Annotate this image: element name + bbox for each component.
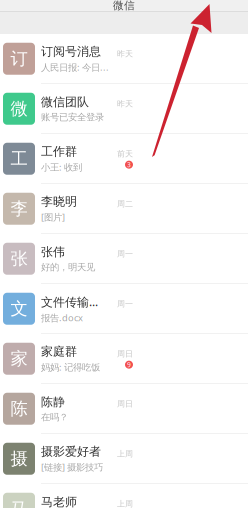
button[interactable]: 陈: [0, 384, 248, 434]
button[interactable]: 张: [0, 234, 248, 284]
button[interactable]: 家: [0, 334, 248, 384]
staticText: 微: [10, 98, 27, 119]
staticText: 工: [10, 148, 27, 169]
staticText: 微信团队: [41, 95, 89, 109]
staticText: 昨天: [117, 49, 133, 59]
staticText: 摄影爱好者: [41, 444, 101, 459]
staticText: 周日: [117, 399, 133, 409]
staticText: 账号已安全登录: [41, 111, 104, 123]
button[interactable]: 李: [0, 184, 248, 234]
staticText: 妈妈: 记得吃饭: [41, 361, 100, 373]
button[interactable]: 工: [0, 134, 248, 184]
staticText: 订阅号消息: [41, 44, 101, 59]
staticText: 张伟: [41, 245, 65, 259]
staticText: 微信: [113, 0, 135, 12]
staticText: 李晓明: [41, 194, 77, 209]
staticText: 周一: [117, 249, 133, 259]
staticText: 好的，明天见: [41, 261, 95, 273]
staticText: 小王: 收到: [41, 161, 82, 173]
button[interactable]: 微: [0, 84, 248, 134]
staticText: 陈: [10, 398, 27, 419]
staticText: [图片]: [41, 211, 65, 223]
staticText: 订: [10, 48, 27, 69]
button[interactable]: 订: [0, 34, 248, 84]
staticText: 周一: [117, 299, 133, 309]
staticText: 前天: [117, 149, 133, 159]
staticText: 陈静: [41, 395, 65, 409]
staticText: 上周: [117, 499, 133, 508]
staticText: 周二: [117, 199, 133, 209]
staticText: 9: [127, 360, 131, 369]
staticText: 家庭群: [41, 344, 77, 359]
staticText: 马: [10, 498, 27, 508]
button[interactable]: 摄: [0, 434, 248, 484]
staticText: 李: [10, 198, 27, 219]
staticText: 昨天: [117, 99, 133, 109]
staticText: 文件传输助手: [41, 294, 109, 310]
staticText: 摄: [10, 448, 27, 469]
button[interactable]: 马: [0, 484, 248, 508]
staticText: 家: [10, 348, 27, 369]
staticText: [链接] 摄影技巧: [41, 461, 103, 473]
staticText: 上周: [117, 449, 133, 459]
staticText: 工作群: [41, 144, 77, 159]
staticText: 在吗？: [41, 411, 68, 423]
staticText: 3: [127, 160, 131, 169]
staticText: 张: [10, 248, 27, 269]
staticText: 人民日报: 今日要闻: [41, 61, 109, 73]
staticText: 马老师: [41, 495, 77, 508]
staticText: 报告.docx: [41, 312, 83, 324]
staticText: 周日: [117, 349, 133, 359]
button[interactable]: 文: [0, 284, 248, 334]
staticText: 文: [10, 298, 27, 319]
